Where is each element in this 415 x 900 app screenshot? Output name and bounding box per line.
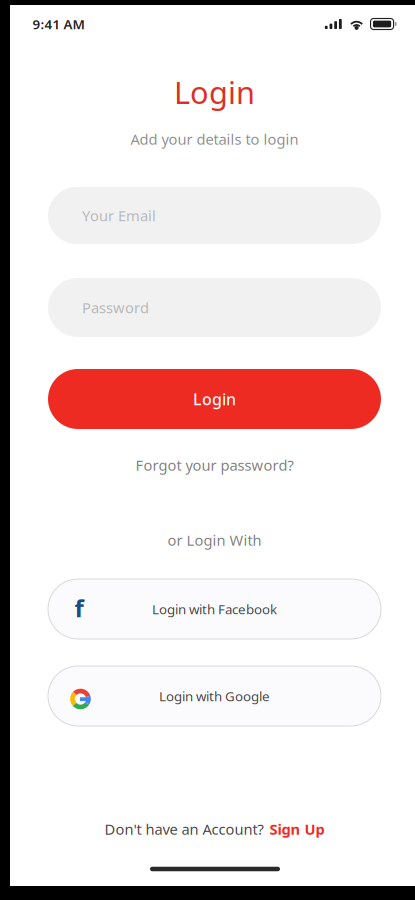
staticText: or Login With [167,530,261,550]
staticText: Login [174,72,255,112]
button[interactable]: Forgot your password? [135,455,293,475]
staticText: Forgot your password? [135,455,293,475]
staticText: Login with Google [159,687,270,705]
button[interactable]: Sign Up [269,819,324,839]
staticText: Add your details to login [130,129,298,149]
staticText: Password [82,298,149,317]
staticText: 9:41 AM [32,15,84,33]
staticText: Login [193,388,236,410]
staticText: Your Email [82,206,156,225]
button[interactable]: Login [48,369,381,429]
staticText: f [74,592,83,624]
staticText: Sign Up [269,819,324,839]
staticText: Don't have an Account? [104,819,263,839]
button[interactable]: Login with Google [48,666,381,726]
button[interactable]: Login with Facebook [48,579,381,639]
staticText: Login with Facebook [152,600,277,618]
